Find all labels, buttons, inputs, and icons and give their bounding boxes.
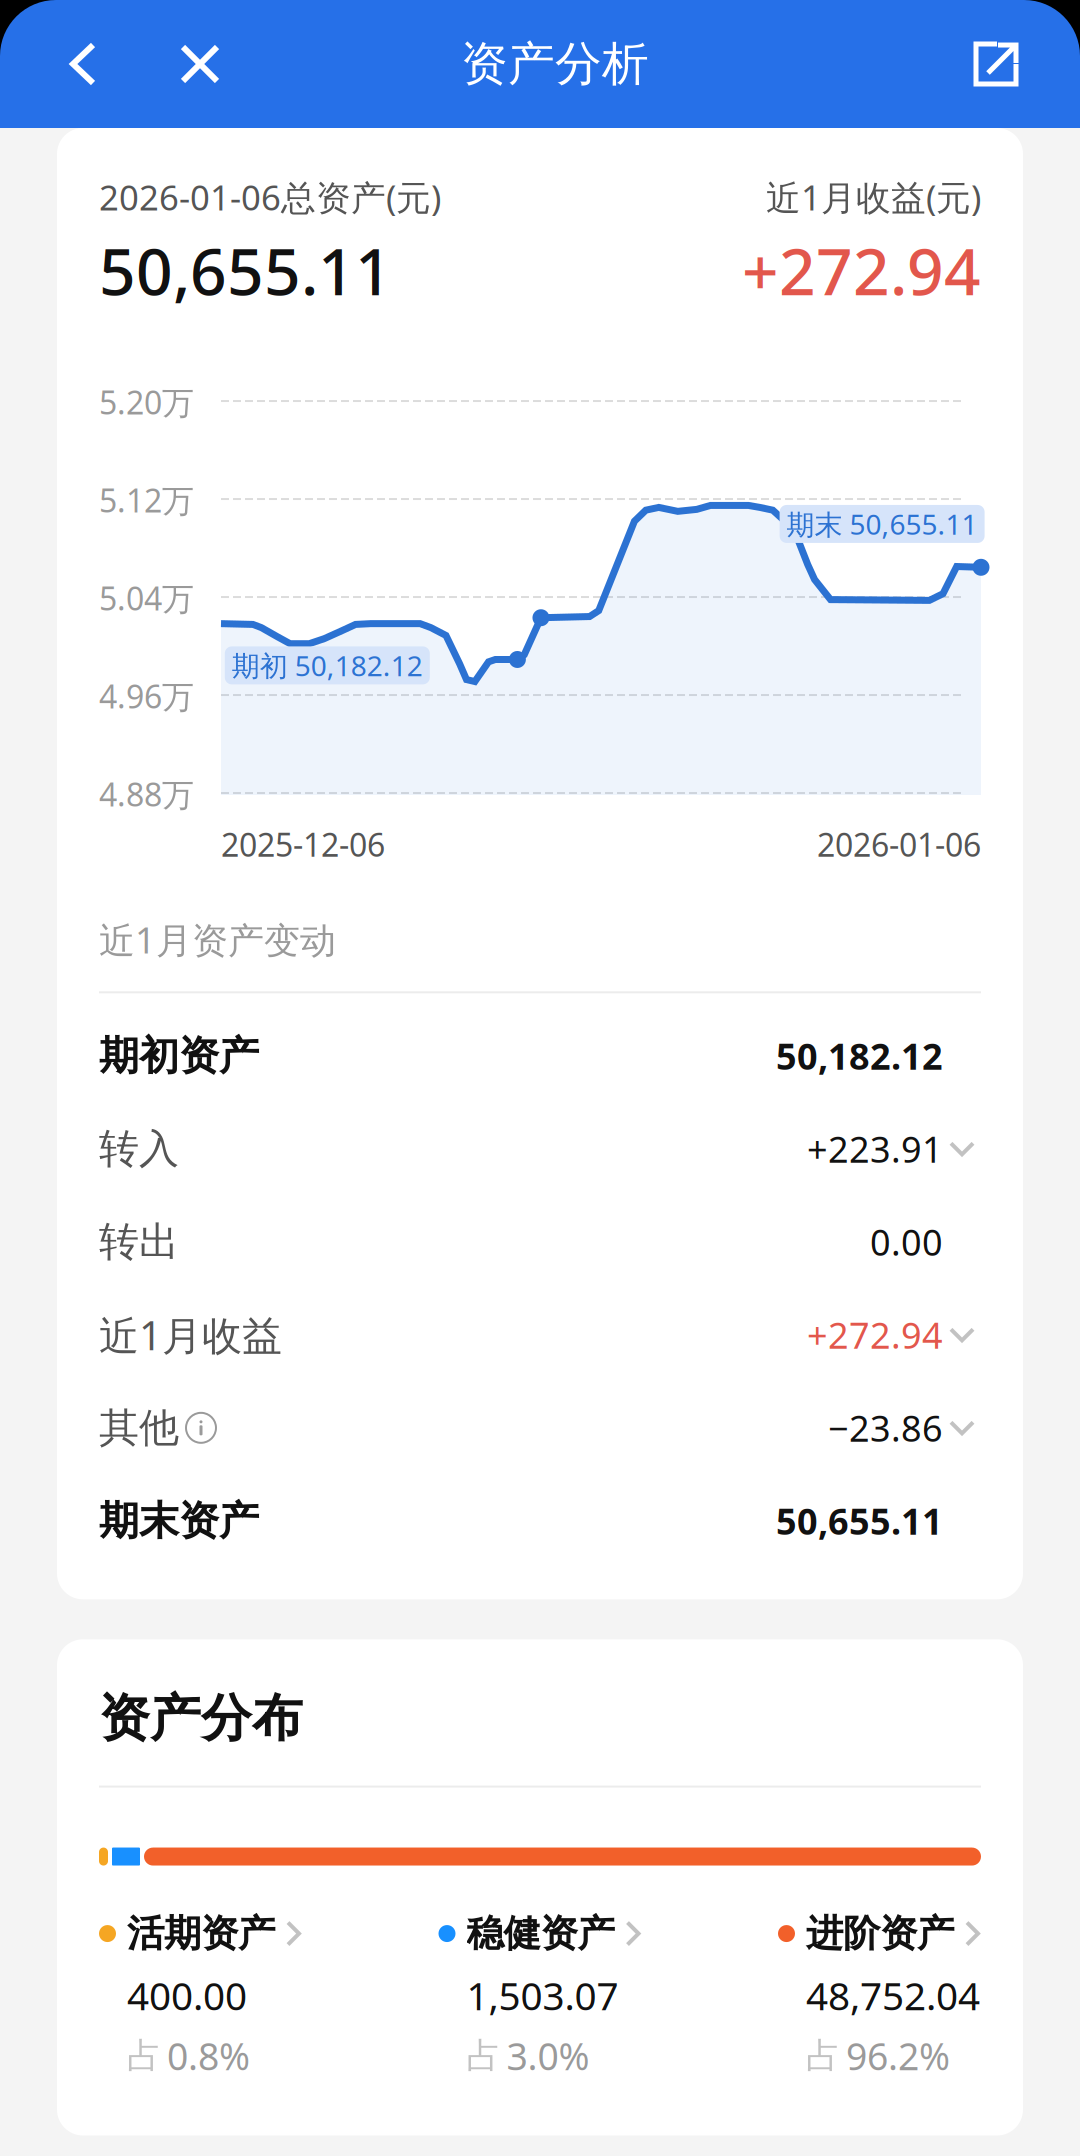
staticText: 1,503.07 <box>466 1970 618 2021</box>
staticText: 96.2% <box>846 2031 950 2080</box>
button[interactable]: 进阶资产 <box>778 1914 981 2080</box>
staticText: 转出 <box>99 1217 179 1266</box>
staticText: +272.94 <box>807 1311 943 1359</box>
staticText: 5.04万 <box>99 577 194 619</box>
button[interactable]: Close <box>154 0 246 128</box>
staticText: 2025-12-06 <box>221 823 385 865</box>
staticText: 4.88万 <box>99 773 194 815</box>
staticText: 400.00 <box>127 1970 247 2021</box>
staticText: 5.12万 <box>99 479 194 521</box>
button[interactable]: 转出 <box>99 1195 981 1288</box>
button[interactable]: 稳健资产 <box>438 1914 641 2080</box>
staticText: 3.0% <box>506 2031 589 2080</box>
button[interactable]: Back <box>0 0 154 128</box>
staticText: 近1月收益(元) <box>766 174 981 220</box>
staticText: 近1月收益 <box>99 1308 282 1361</box>
staticText: 0.00 <box>870 1218 943 1266</box>
staticText: 5.20万 <box>99 381 194 423</box>
staticText: 占 <box>806 2034 841 2077</box>
staticText: 其他 <box>99 1403 179 1452</box>
staticText: 转入 <box>99 1124 179 1173</box>
staticText: 稳健资产 <box>466 1911 614 1956</box>
staticText: 2026-01-06总资产(元) <box>99 174 441 220</box>
staticText: 期初资产 <box>99 1031 259 1080</box>
staticText: 50,182.12 <box>776 1032 943 1080</box>
staticText: +223.91 <box>807 1125 943 1173</box>
staticText: −23.86 <box>828 1404 943 1452</box>
button[interactable]: 期末资产 <box>99 1474 981 1567</box>
staticText: 2026-01-06 <box>817 823 981 865</box>
button[interactable]: 期初资产 <box>99 1009 981 1102</box>
button[interactable]: 转入 <box>99 1102 981 1195</box>
staticText: +272.94 <box>742 228 981 313</box>
staticText: 48,752.04 <box>806 1970 980 2021</box>
staticText: 0.8% <box>167 2031 250 2080</box>
staticText: 进阶资产 <box>806 1911 954 1956</box>
staticText: 近1月资产变动 <box>99 915 336 963</box>
staticText: 期末 50,655.11 <box>787 505 978 543</box>
staticText: 占 <box>466 2034 501 2077</box>
staticText: 占 <box>127 2034 162 2077</box>
staticText: 资产分布 <box>99 1687 303 1749</box>
staticText: 4.96万 <box>99 675 194 717</box>
staticText: 资产分析 <box>461 35 649 93</box>
staticText: 期末资产 <box>99 1496 259 1545</box>
button[interactable]: 活期资产 <box>99 1914 302 2080</box>
staticText: 活期资产 <box>127 1911 275 1956</box>
staticText: 期初 50,182.12 <box>232 647 423 684</box>
button[interactable]: 近1月收益 <box>99 1288 981 1381</box>
button[interactable]: Share <box>941 0 1080 128</box>
staticText: 50,655.11 <box>776 1497 943 1545</box>
button[interactable]: 其他 <box>99 1381 981 1474</box>
staticText: 50,655.11 <box>99 228 392 313</box>
